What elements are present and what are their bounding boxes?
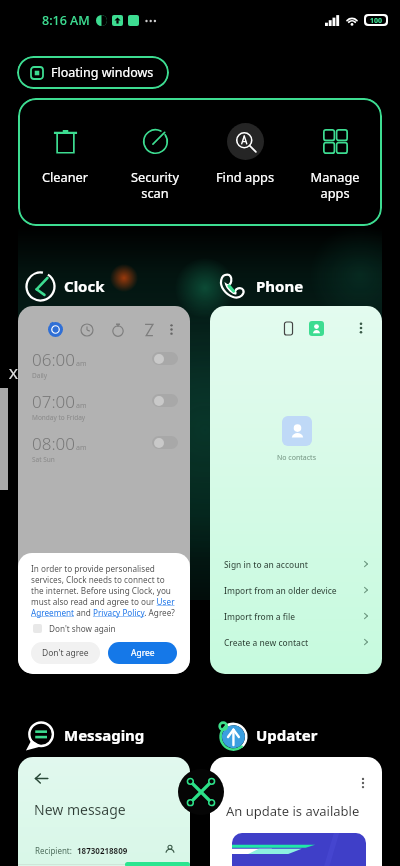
staticText: Security scan: [112, 168, 198, 201]
button[interactable]: Import from an older device: [224, 577, 370, 603]
staticText: Sign in to an account: [224, 559, 308, 570]
staticText: Clock: [64, 276, 105, 296]
staticText: am: [76, 443, 87, 453]
staticText: 07:00: [32, 390, 75, 413]
button[interactable]: Clear all: [178, 769, 224, 815]
button[interactable]: No contacts: [210, 306, 382, 674]
button[interactable]: [152, 436, 178, 449]
staticText: Create a new contact: [224, 637, 309, 648]
button[interactable]: Create a new contact: [224, 629, 370, 655]
staticText: Don't agree: [42, 647, 89, 659]
button[interactable]: Import from a file: [224, 603, 370, 629]
staticText: Messaging: [64, 725, 145, 745]
button[interactable]: New message: [18, 757, 190, 866]
button[interactable]: Messaging: [25, 719, 145, 751]
button[interactable]: Manage apps: [292, 98, 378, 226]
staticText: am: [76, 401, 87, 411]
button[interactable]: 06:00: [18, 306, 190, 674]
staticText: Updater: [256, 725, 318, 745]
staticText: Daily: [32, 371, 48, 380]
staticText: Cleaner: [22, 168, 108, 185]
staticText: Sat Sun: [32, 455, 55, 464]
staticText: am: [76, 359, 87, 369]
staticText: In order to provide personalised service…: [31, 563, 177, 618]
staticText: 8:16 AM: [42, 12, 90, 29]
staticText: Import from a file: [224, 611, 296, 622]
button[interactable]: [152, 352, 178, 365]
staticText: Phone: [256, 276, 304, 296]
staticText: 18730218809: [77, 845, 128, 856]
staticText: Recipient:: [35, 845, 72, 856]
staticText: Manage apps: [292, 168, 378, 201]
staticText: Agree: [131, 647, 155, 659]
button[interactable]: [152, 394, 178, 407]
button[interactable]: Cleaner: [22, 98, 108, 226]
staticText: 100: [370, 16, 383, 24]
button[interactable]: Security scan: [112, 98, 198, 226]
button[interactable]: Updater: [217, 719, 318, 751]
staticText: Import from an older device: [224, 585, 337, 596]
button[interactable]: Phone: [217, 270, 304, 302]
staticText: Monday to Friday: [32, 413, 86, 422]
staticText: Find apps: [202, 168, 288, 185]
button[interactable]: Clock: [25, 270, 105, 302]
button[interactable]: An update is available: [210, 757, 382, 866]
staticText: No contacts: [277, 453, 316, 463]
button[interactable]: Floating windows: [17, 56, 169, 89]
button[interactable]: Find apps: [202, 98, 288, 226]
staticText: Floating windows: [51, 64, 154, 81]
staticText: X: [9, 363, 18, 383]
staticText: 08:00: [32, 432, 75, 455]
button[interactable]: Don't agree: [31, 642, 100, 664]
staticText: An update is available: [226, 802, 360, 820]
button[interactable]: Agree: [108, 642, 177, 664]
button[interactable]: Sign in to an account: [224, 551, 370, 577]
staticText: Don't show again: [49, 623, 116, 634]
staticText: New message: [34, 800, 126, 819]
staticText: 06:00: [32, 348, 75, 371]
